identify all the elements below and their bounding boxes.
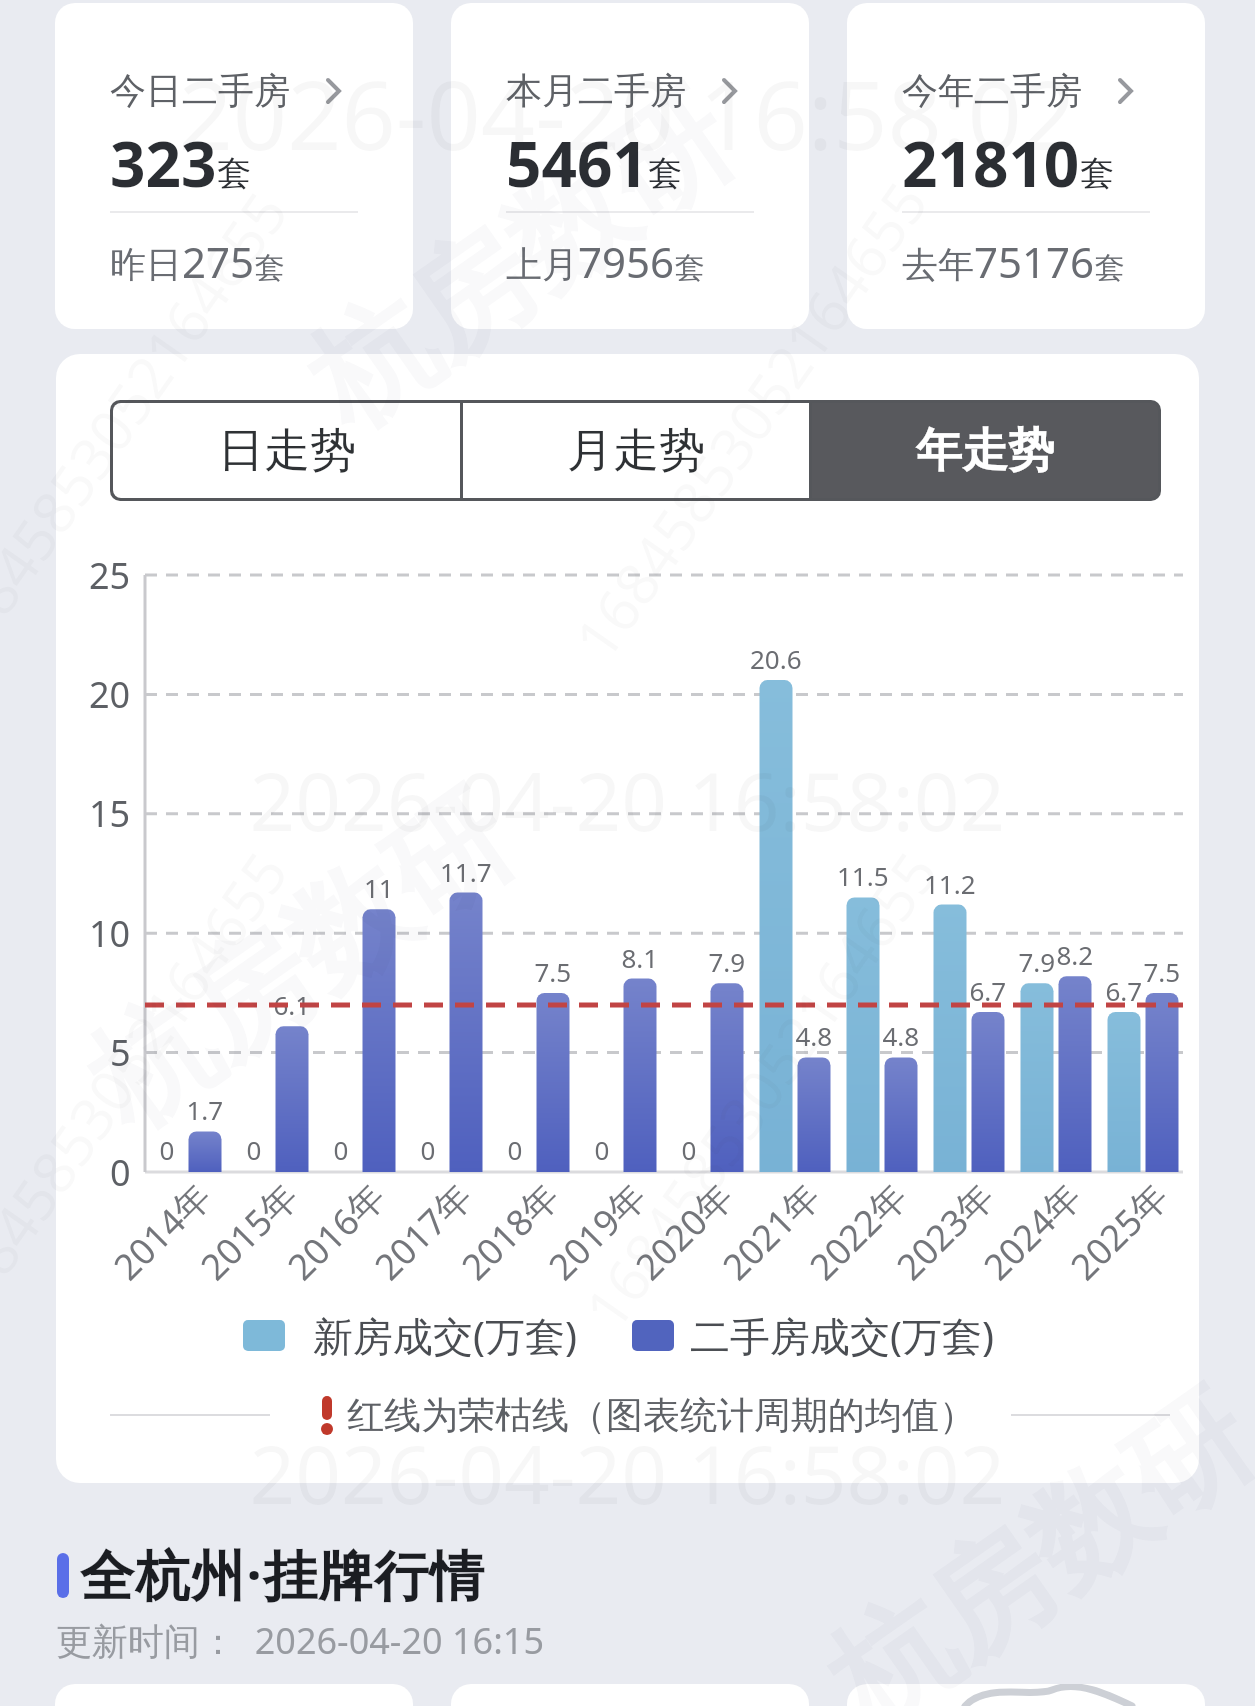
staticText: 全杭州·挂牌行情 — [80, 1537, 486, 1611]
staticText: 更新时间： 2026-04-20 16:15 — [56, 1616, 545, 1665]
staticText: 上月 — [506, 242, 578, 287]
staticText: 套 — [255, 249, 285, 287]
button[interactable]: 日走势 — [113, 403, 460, 498]
staticText: 7956 — [578, 233, 675, 290]
staticText: 本月二手房 — [506, 68, 686, 113]
staticText: 323 — [110, 121, 217, 205]
staticText: 年走势 — [916, 422, 1054, 480]
button[interactable]: 年走势 — [812, 403, 1158, 498]
staticText: 日走势 — [218, 422, 356, 480]
button[interactable]: 今年二手房 — [847, 3, 1205, 329]
staticText: 5461 — [506, 121, 648, 205]
staticText: 昨日 — [110, 242, 182, 287]
staticText: 75176 — [974, 233, 1095, 290]
staticText: 套 — [648, 152, 682, 195]
staticText: 21810 — [902, 121, 1080, 205]
staticText: 套 — [217, 152, 251, 195]
staticText: 去年 — [902, 242, 974, 287]
button[interactable]: 今日二手房 — [55, 3, 413, 329]
staticText: 今年二手房 — [902, 68, 1082, 113]
staticText: 月走势 — [567, 422, 705, 480]
staticText: 今日二手房 — [110, 68, 290, 113]
button[interactable]: 月走势 — [463, 403, 809, 498]
staticText: 275 — [182, 233, 255, 290]
button[interactable]: 本月二手房 — [451, 3, 809, 329]
staticText: 套 — [1080, 152, 1114, 195]
staticText: 套 — [675, 249, 705, 287]
staticText: 套 — [1095, 249, 1125, 287]
